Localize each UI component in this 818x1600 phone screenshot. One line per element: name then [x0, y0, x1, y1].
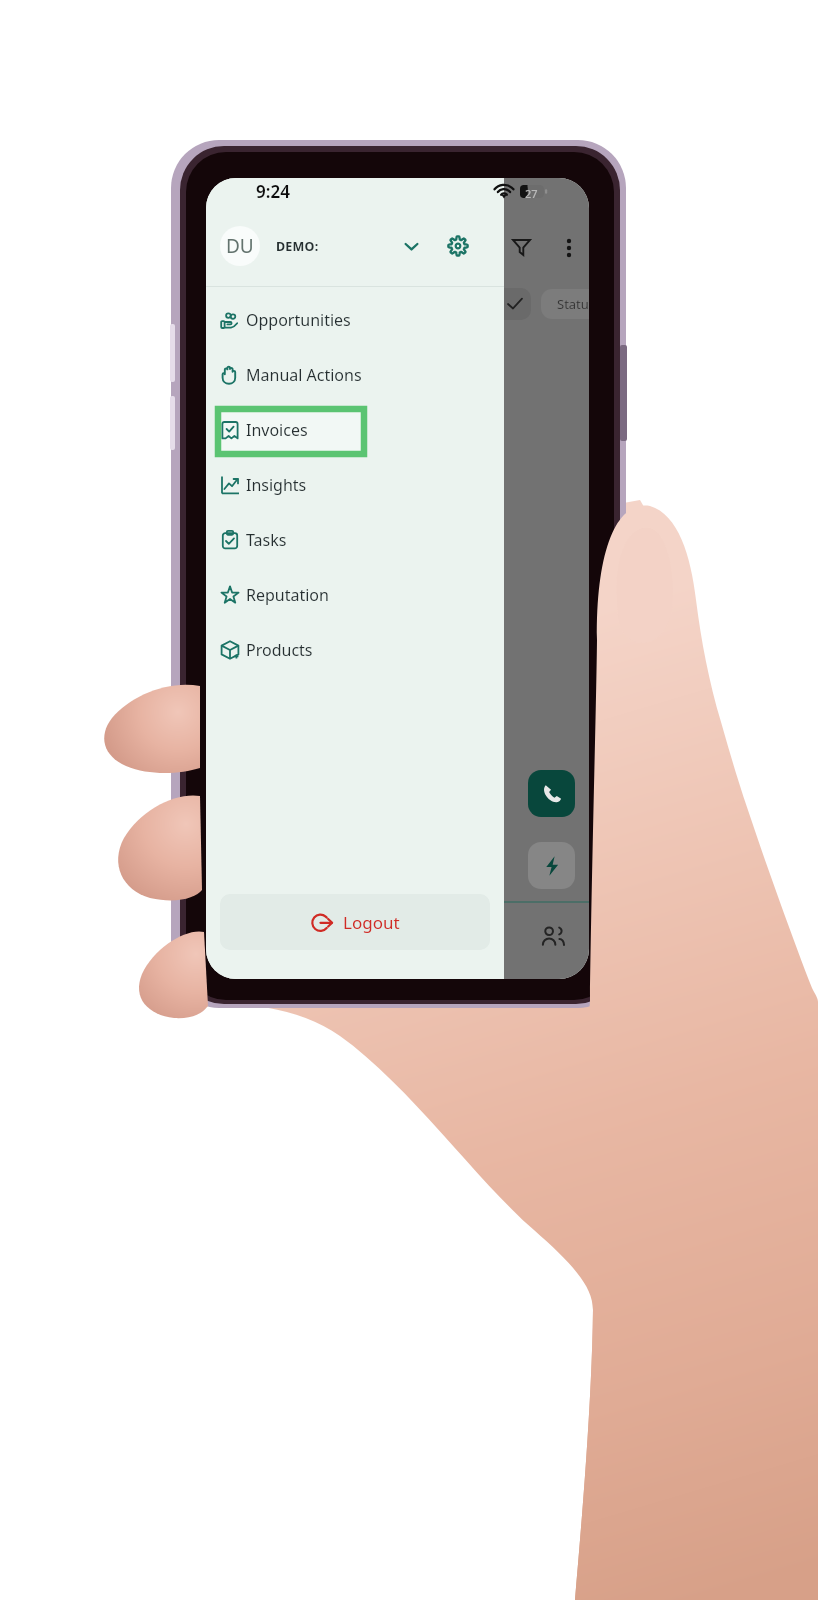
- button[interactable]: Selected filter: [480, 288, 531, 320]
- staticText: Insights: [246, 474, 307, 496]
- staticText: Tasks: [246, 529, 287, 551]
- staticText: Opportunities: [246, 309, 351, 331]
- button[interactable]: Status: [541, 289, 589, 319]
- button[interactable]: Settings: [441, 229, 475, 263]
- staticText: DEMO:: [276, 238, 319, 255]
- button[interactable]: Manual Actions: [206, 347, 504, 402]
- button[interactable]: Products: [206, 622, 504, 677]
- staticText: Products: [246, 639, 313, 661]
- button[interactable]: Opportunities: [206, 292, 504, 347]
- button[interactable]: Logout: [220, 894, 490, 950]
- staticText: 27: [525, 186, 538, 201]
- button[interactable]: Switch account: [395, 230, 427, 262]
- staticText: 9:24: [256, 180, 290, 203]
- staticText: Invoices: [246, 419, 308, 441]
- staticText: DU: [226, 233, 254, 259]
- staticText: Manual Actions: [246, 364, 362, 386]
- button[interactable]: Quick action: [528, 842, 575, 889]
- button[interactable]: Tasks: [206, 512, 504, 567]
- staticText: Status: [557, 295, 589, 313]
- button[interactable]: Invoices: [206, 402, 504, 457]
- button[interactable]: Insights: [206, 457, 504, 512]
- button[interactable]: Reputation: [206, 567, 504, 622]
- button[interactable]: Contacts: [528, 913, 575, 960]
- staticText: Logout: [343, 911, 400, 934]
- staticText: Reputation: [246, 584, 329, 606]
- button[interactable]: DU: [206, 205, 504, 286]
- button[interactable]: Call: [528, 770, 575, 817]
